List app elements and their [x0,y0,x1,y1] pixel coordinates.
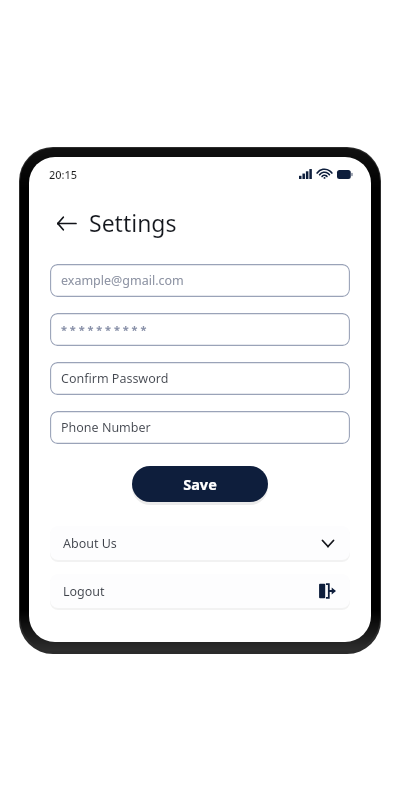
staticText: * * * * * * * * * * [61,322,147,337]
button[interactable]: Logout [50,574,350,608]
button[interactable]: Back [51,208,81,238]
staticText: 20:15 [49,167,78,182]
button[interactable]: Phone Number [50,411,350,444]
staticText: Phone Number [61,419,151,436]
staticText: About Us [63,535,117,552]
staticText: Settings [89,207,177,238]
button[interactable]: Confirm Password [50,362,350,395]
staticText: Save [183,474,217,494]
staticText: Confirm Password [61,370,169,387]
button[interactable]: About Us [50,526,350,560]
button[interactable]: * * * * * * * * * * [50,313,350,346]
other: Expand [319,534,337,552]
button[interactable]: example@gmail.com [50,264,350,297]
button[interactable]: Save [132,466,268,502]
staticText: example@gmail.com [61,272,184,289]
other: Logout [317,581,337,601]
staticText: Logout [63,583,105,600]
